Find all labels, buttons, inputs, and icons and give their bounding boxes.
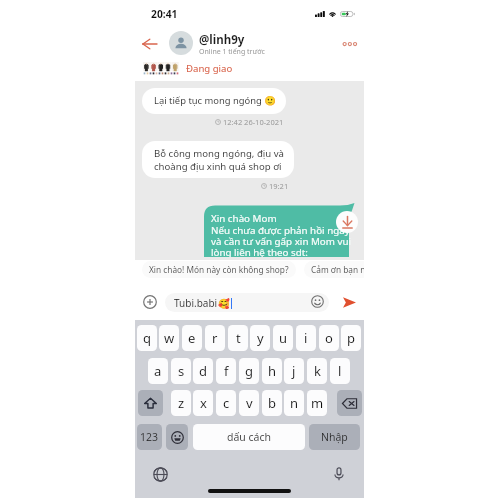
staticText: f (224, 362, 229, 380)
button[interactable]: Shift (138, 390, 163, 416)
button[interactable]: r (205, 325, 225, 351)
button[interactable]: Send (341, 294, 358, 311)
staticText: 19:21 (269, 181, 289, 191)
staticText: Online 1 tiếng trước (199, 47, 265, 57)
staticText: 12:42 26-10-2021 (223, 117, 284, 127)
staticText: @linh9y (199, 32, 245, 48)
staticText: v (246, 394, 253, 412)
button[interactable]: Backspace (337, 390, 362, 416)
staticText: Đang giao (186, 62, 233, 75)
staticText: l (338, 362, 342, 380)
staticText: y (257, 329, 264, 347)
staticText: i (304, 329, 308, 347)
staticText: Xin chào! Món này còn không shop? (149, 264, 289, 275)
staticText: a (154, 362, 162, 380)
button[interactable]: m (307, 390, 327, 416)
button[interactable]: Return (309, 424, 360, 450)
button[interactable]: More options (340, 34, 360, 54)
button[interactable]: x (193, 390, 213, 416)
staticText: r (212, 329, 218, 347)
staticText: d (199, 362, 207, 380)
staticText: c (223, 394, 230, 412)
button[interactable]: f (216, 358, 236, 384)
button[interactable]: n (284, 390, 304, 416)
button[interactable]: y (250, 325, 270, 351)
button[interactable]: l (330, 358, 350, 384)
staticText: w (164, 329, 175, 347)
staticText: x (200, 394, 207, 412)
button[interactable]: h (262, 358, 282, 384)
button[interactable]: q (137, 325, 157, 351)
button[interactable]: Emoji (311, 295, 324, 308)
staticText: 🥰 (218, 298, 230, 309)
staticText: s (178, 362, 185, 380)
button[interactable]: w (159, 325, 179, 351)
staticText: b (268, 394, 276, 412)
button[interactable]: Add attachment (143, 295, 157, 309)
button[interactable]: t (228, 325, 248, 351)
staticText: o (325, 329, 333, 347)
button[interactable]: Bỗ công mong ngóng, địu và choàng địu xi… (142, 141, 294, 178)
button[interactable]: v (239, 390, 259, 416)
staticText: Lại tiếp tục mong ngóng 🙂 (154, 94, 276, 107)
button[interactable]: e (182, 325, 202, 351)
staticText: 20:41 (151, 7, 178, 21)
staticText: n (290, 394, 299, 412)
staticText: Cảm ơn bạn nhé shop (311, 264, 364, 275)
staticText: t (236, 329, 241, 347)
staticText: Nhập (321, 430, 348, 444)
button[interactable]: Lại tiếp tục mong ngóng 🙂 (142, 88, 286, 114)
staticText: dấu cách (227, 430, 272, 444)
button[interactable]: Numbers (137, 424, 162, 450)
button[interactable]: g (239, 358, 259, 384)
button[interactable]: p (341, 325, 361, 351)
button[interactable]: Emoji keyboard (166, 424, 188, 450)
button[interactable]: s (171, 358, 191, 384)
button[interactable]: i (296, 325, 316, 351)
staticText: k (314, 362, 321, 380)
button[interactable]: Tubi.babi (165, 293, 329, 312)
staticText: q (143, 329, 151, 347)
button[interactable]: Back (138, 33, 160, 55)
button[interactable]: Đang giao (135, 57, 364, 79)
button[interactable]: a (148, 358, 168, 384)
staticText: e (188, 329, 196, 347)
button[interactable]: Change keyboard (152, 466, 168, 482)
staticText: u (279, 329, 288, 347)
button[interactable]: o (319, 325, 339, 351)
staticText: z (178, 394, 185, 412)
button[interactable]: j (284, 358, 304, 384)
staticText: Bỗ công mong ngóng, địu và choàng địu xi… (154, 147, 284, 172)
button[interactable]: d (193, 358, 213, 384)
button[interactable]: z (171, 390, 191, 416)
button[interactable]: c (216, 390, 236, 416)
button[interactable]: u (273, 325, 293, 351)
staticText: g (245, 362, 253, 380)
staticText: Tubi.babi (174, 296, 218, 310)
staticText: m (311, 394, 324, 412)
staticText: j (292, 362, 296, 380)
button[interactable]: b (262, 390, 282, 416)
staticText: Xin chào Mom Nếu chưa được phản hồi ngay… (211, 212, 352, 257)
button[interactable]: Dictation (331, 466, 347, 482)
staticText: p (347, 329, 355, 347)
button[interactable]: Xin chào! Món này còn không shop? (142, 261, 296, 278)
button[interactable]: k (307, 358, 327, 384)
staticText: h (268, 362, 277, 380)
button[interactable]: dấu cách (193, 424, 305, 450)
button[interactable]: Download (336, 211, 358, 233)
button[interactable]: Cảm ơn bạn nhé shop (304, 261, 364, 278)
staticText: 123 (140, 430, 159, 444)
